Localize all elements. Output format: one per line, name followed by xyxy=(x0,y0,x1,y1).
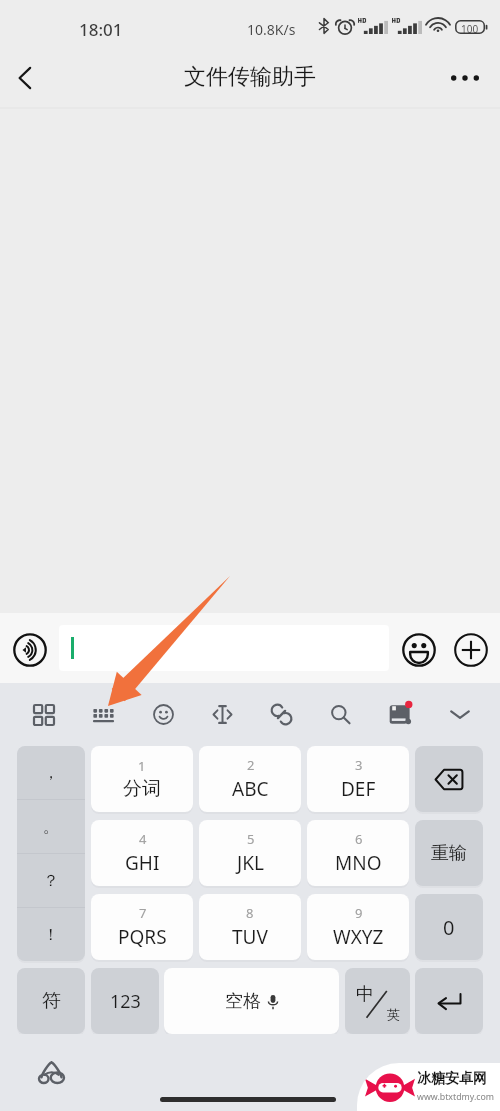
button[interactable]: 空格 xyxy=(164,968,339,1034)
staticText: 6 xyxy=(355,830,363,848)
staticText: 8 xyxy=(246,904,254,922)
staticText: 符 xyxy=(42,989,61,1013)
staticText: 2 xyxy=(247,756,255,774)
staticText: WXYZ xyxy=(333,924,384,950)
button[interactable]: Sogou input settings xyxy=(29,1050,73,1094)
button[interactable]: 9 xyxy=(307,894,409,960)
staticText: DEF xyxy=(341,776,376,802)
staticText: 18:01 xyxy=(79,18,123,41)
button[interactable]: ！ xyxy=(17,908,85,961)
staticText: 冰糖安卓网 xyxy=(417,1070,487,1088)
staticText: TUV xyxy=(232,924,268,950)
staticText: ？ xyxy=(43,871,59,891)
staticText: 。 xyxy=(43,817,59,837)
staticText: 英 xyxy=(387,1006,400,1022)
staticText: ！ xyxy=(43,925,59,945)
staticText: 分词 xyxy=(123,777,161,801)
staticText: 7 xyxy=(139,904,147,922)
staticText: www.btxtdmy.com xyxy=(417,1091,495,1103)
staticText: 123 xyxy=(110,989,141,1014)
button[interactable]: More options xyxy=(441,54,489,102)
button[interactable]: ？ xyxy=(17,854,85,907)
staticText: 9 xyxy=(355,904,363,922)
button[interactable]: Back xyxy=(0,54,48,102)
button[interactable] xyxy=(59,625,389,671)
button[interactable]: Keyboard xyxy=(79,690,127,738)
staticText: 中 xyxy=(356,983,374,1006)
button[interactable]: Search xyxy=(316,690,364,738)
staticText: 空格 xyxy=(225,990,261,1013)
button[interactable]: 3 xyxy=(307,746,409,812)
button[interactable]: Clipboard xyxy=(257,690,305,738)
staticText: 10.8K/s xyxy=(247,20,296,39)
staticText: 4 xyxy=(139,830,147,848)
staticText: MNO xyxy=(335,850,382,876)
staticText: 1 xyxy=(138,757,146,775)
button[interactable]: 8 xyxy=(199,894,301,960)
staticText: 100 xyxy=(461,22,479,36)
button[interactable]: Edit text xyxy=(198,690,246,738)
staticText: JKL xyxy=(237,850,264,876)
staticText: ， xyxy=(43,763,59,783)
button[interactable]: 5 xyxy=(199,820,301,886)
staticText: GHI xyxy=(125,850,160,876)
button[interactable]: Enter xyxy=(415,968,483,1034)
staticText: 3 xyxy=(355,756,363,774)
button[interactable]: Backspace xyxy=(415,746,483,812)
button[interactable]: 符 xyxy=(17,968,85,1034)
staticText: 0 xyxy=(443,914,455,941)
button[interactable]: 6 xyxy=(307,820,409,886)
button[interactable]: Phrases xyxy=(376,690,424,738)
button[interactable]: Collapse keyboard xyxy=(436,690,484,738)
button[interactable]: Keyboard layouts xyxy=(19,690,67,738)
staticText: ABC xyxy=(232,776,269,802)
staticText: 5 xyxy=(247,830,255,848)
button[interactable]: 。 xyxy=(17,800,85,853)
button[interactable]: Switch Chinese English xyxy=(345,968,410,1034)
button[interactable]: 4 xyxy=(91,820,193,886)
button[interactable]: More functions xyxy=(449,628,493,672)
button[interactable]: Voice input xyxy=(8,628,52,672)
button[interactable]: 重输 xyxy=(415,820,483,886)
button[interactable]: 1 xyxy=(91,746,193,812)
button[interactable]: 0 xyxy=(415,894,483,960)
button[interactable]: ， xyxy=(17,746,85,799)
staticText: PQRS xyxy=(118,924,167,950)
button[interactable]: Emoji xyxy=(397,628,441,672)
button[interactable]: 2 xyxy=(199,746,301,812)
button[interactable]: 7 xyxy=(91,894,193,960)
staticText: 文件传输助手 xyxy=(184,63,316,91)
button[interactable]: 123 xyxy=(91,968,159,1034)
staticText: 重输 xyxy=(431,842,467,865)
button[interactable]: Emoji xyxy=(139,690,187,738)
